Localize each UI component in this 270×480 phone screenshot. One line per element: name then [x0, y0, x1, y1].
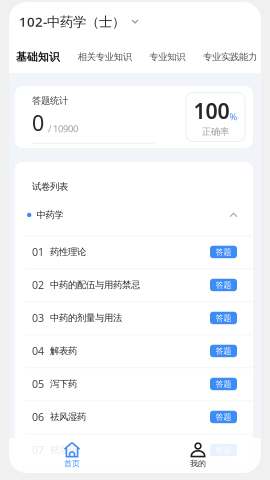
- staticText: 答题: [215, 280, 231, 290]
- staticText: 03: [32, 311, 44, 325]
- button[interactable]: 01: [15, 235, 253, 268]
- staticText: 答题: [215, 313, 231, 323]
- button[interactable]: 07: [15, 433, 253, 466]
- button[interactable]: 03: [15, 301, 253, 334]
- staticText: 100: [193, 97, 229, 125]
- staticText: 102-中药学（士）: [19, 13, 125, 30]
- staticText: 07: [32, 443, 44, 457]
- staticText: 泻下药: [50, 378, 77, 390]
- staticText: 正确率: [202, 126, 229, 137]
- staticText: 答题统计: [32, 95, 68, 106]
- button[interactable]: 102-中药学（士）: [15, 8, 142, 34]
- staticText: 我的: [190, 459, 206, 468]
- staticText: %: [229, 110, 237, 123]
- staticText: 04: [32, 344, 44, 358]
- staticText: 答题: [215, 346, 231, 356]
- button[interactable]: 专业知识: [147, 45, 187, 69]
- button[interactable]: 专业实践能力: [201, 45, 259, 69]
- staticText: 药性理论: [50, 246, 86, 258]
- button[interactable]: 04: [15, 334, 253, 367]
- button[interactable]: 首页: [9, 438, 135, 473]
- button[interactable]: 基础知识: [14, 45, 62, 69]
- staticText: 试卷列表: [32, 181, 68, 192]
- staticText: 答题: [215, 412, 231, 422]
- staticText: 基础知识: [16, 50, 60, 63]
- staticText: 中药的剂量与用法: [50, 312, 122, 324]
- staticText: 解表药: [50, 345, 77, 357]
- staticText: 祛风湿药: [50, 411, 86, 423]
- button[interactable]: 中药学: [15, 194, 253, 235]
- button[interactable]: 我的: [135, 438, 261, 473]
- staticText: 05: [32, 377, 44, 391]
- button[interactable]: 相关专业知识: [76, 45, 134, 69]
- staticText: 相关专业知识: [78, 51, 132, 63]
- button[interactable]: 05: [15, 367, 253, 400]
- button[interactable]: 06: [15, 400, 253, 433]
- staticText: 中药学: [36, 209, 63, 221]
- staticText: 专业知识: [149, 51, 185, 63]
- staticText: 答题: [215, 379, 231, 389]
- staticText: 02: [32, 278, 44, 292]
- staticText: 0: [32, 108, 44, 137]
- button[interactable]: 02: [15, 268, 253, 301]
- staticText: 首页: [64, 459, 80, 468]
- staticText: 06: [32, 410, 44, 424]
- staticText: 中药的配伍与用药禁忌: [50, 279, 140, 291]
- staticText: 答题: [215, 445, 231, 455]
- staticText: 01: [32, 245, 44, 259]
- staticText: 祛湿药: [50, 444, 77, 456]
- staticText: / 10900: [48, 122, 78, 135]
- staticText: 答题: [215, 247, 231, 257]
- staticText: 专业实践能力: [203, 51, 257, 63]
